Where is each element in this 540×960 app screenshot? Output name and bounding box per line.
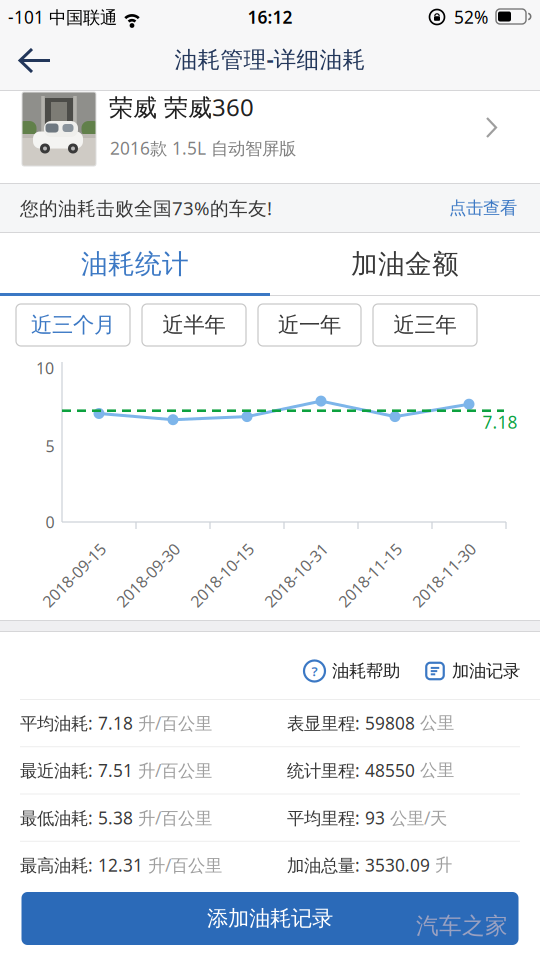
- staticText: 汽车之家: [416, 912, 508, 940]
- staticText: 点击查看: [449, 197, 517, 219]
- staticText: 最近油耗:: [20, 759, 98, 782]
- staticText: 5: [45, 435, 54, 457]
- staticText: 0: [45, 511, 54, 533]
- button[interactable]: 点击查看: [438, 183, 528, 233]
- staticText: 加油记录: [452, 660, 520, 682]
- button[interactable]: 近半年: [142, 304, 246, 346]
- button[interactable]: 油耗统计: [0, 234, 270, 294]
- staticText: 2018-11-15: [329, 564, 411, 586]
- staticText: 表显里程:: [287, 711, 365, 734]
- staticText: 公里: [420, 712, 454, 734]
- staticText: 48550: [365, 759, 420, 782]
- staticText: 最低油耗:: [20, 806, 98, 829]
- staticText: 2018-10-15: [181, 564, 263, 586]
- staticText: 平均里程:: [287, 806, 365, 829]
- staticText: 升/百公里: [138, 759, 212, 782]
- staticText: 2018-10-31: [255, 564, 337, 586]
- staticText: 2018-09-15: [33, 564, 115, 586]
- button[interactable]: 近三个月: [16, 304, 130, 346]
- staticText: 7.18: [482, 410, 517, 433]
- staticText: 升/百公里: [138, 806, 212, 829]
- staticText: 7.51: [98, 759, 138, 782]
- staticText: 52%: [454, 5, 488, 28]
- staticText: 油耗管理-详细油耗: [174, 44, 365, 74]
- staticText: ?: [311, 662, 317, 680]
- staticText: 93: [365, 806, 390, 829]
- staticText: 近一年: [278, 312, 341, 338]
- staticText: 您的油耗击败全国73%的车友!: [20, 196, 272, 220]
- staticText: 油耗帮助: [332, 660, 400, 682]
- button[interactable]: 加油金额: [270, 234, 540, 294]
- button[interactable]: 加油记录: [426, 660, 520, 682]
- staticText: 平均油耗:: [20, 711, 98, 734]
- staticText: 7.18: [98, 711, 138, 734]
- staticText: 荣威 荣威360: [109, 91, 254, 123]
- staticText: 加油金额: [351, 248, 459, 280]
- staticText: -101 中国联通: [8, 5, 117, 28]
- staticText: 加油总量:: [287, 853, 365, 876]
- staticText: 10: [36, 357, 54, 379]
- staticText: 公里/天: [390, 806, 447, 829]
- staticText: 59808: [365, 711, 420, 734]
- staticText: 2016款 1.5L 自动智屏版: [110, 136, 296, 159]
- button[interactable]: 荣威 荣威360: [0, 91, 540, 183]
- staticText: 统计里程:: [287, 759, 365, 782]
- button[interactable]: 添加油耗记录: [21, 892, 518, 945]
- staticText: 12.31: [98, 853, 148, 876]
- staticText: 5.38: [98, 806, 138, 829]
- button[interactable]: Back: [4, 34, 64, 86]
- staticText: 公里: [420, 760, 454, 781]
- staticText: 升/百公里: [138, 711, 212, 734]
- staticText: 3530.09: [365, 853, 435, 876]
- staticText: 近半年: [162, 312, 225, 338]
- button[interactable]: 近一年: [258, 304, 361, 346]
- staticText: 16:12: [247, 5, 292, 28]
- staticText: 升/百公里: [148, 853, 222, 876]
- staticText: 2018-09-30: [107, 564, 189, 586]
- staticText: 近三个月: [31, 312, 115, 338]
- button[interactable]: 近三年: [373, 304, 477, 346]
- staticText: 2018-11-30: [403, 564, 485, 586]
- staticText: 升: [435, 854, 452, 876]
- staticText: 添加油耗记录: [207, 905, 333, 932]
- staticText: 最高油耗:: [20, 853, 98, 876]
- staticText: 油耗统计: [81, 248, 189, 280]
- button[interactable]: ?: [304, 660, 400, 682]
- staticText: 近三年: [393, 312, 456, 338]
